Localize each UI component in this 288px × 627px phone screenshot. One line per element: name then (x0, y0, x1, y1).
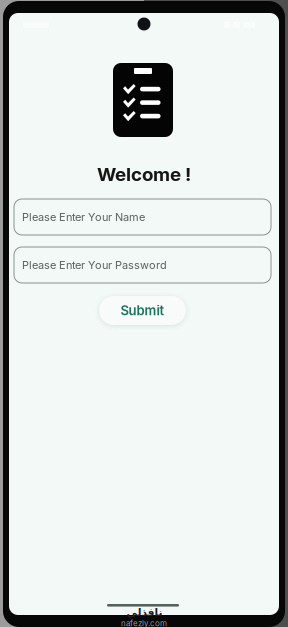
button[interactable]: Please Enter Your Name (14, 199, 271, 235)
staticText: Please Enter Your Name (22, 210, 145, 224)
button[interactable]: Submit (99, 296, 186, 325)
staticText: Submit (120, 303, 164, 318)
staticText: nafezly.com (121, 618, 167, 627)
button[interactable]: Please Enter Your Password (14, 247, 271, 283)
staticText: Please Enter Your Password (22, 258, 167, 272)
staticText: Welcome ! (97, 163, 191, 186)
staticText: نافذلي (126, 606, 162, 618)
